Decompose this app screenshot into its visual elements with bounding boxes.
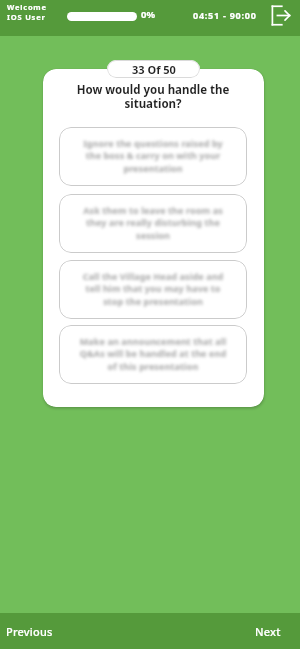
staticText: Previous bbox=[6, 624, 53, 639]
button[interactable]: Ignore the questions raised by the boss … bbox=[59, 127, 247, 186]
staticText: 04:51 - 90:00 bbox=[193, 9, 257, 21]
staticText: Call the Village Head aside and tell him… bbox=[77, 270, 229, 308]
button[interactable]: Next bbox=[249, 613, 300, 649]
staticText: Welcome bbox=[7, 2, 47, 12]
staticText: 33 Of 50 bbox=[132, 62, 176, 77]
staticText: Next bbox=[255, 624, 281, 639]
staticText: Ignore the questions raised by the boss … bbox=[77, 137, 229, 175]
staticText: Ask them to leave the room as they are r… bbox=[77, 204, 229, 242]
button[interactable]: Call the Village Head aside and tell him… bbox=[59, 260, 247, 319]
button[interactable]: Previous bbox=[0, 613, 59, 649]
button[interactable]: Ask them to leave the room as they are r… bbox=[59, 194, 247, 253]
staticText: Make an announcement that all Q&As will … bbox=[77, 335, 229, 373]
staticText: 0% bbox=[141, 8, 156, 21]
button[interactable]: Make an announcement that all Q&As will … bbox=[59, 325, 247, 384]
staticText: IOS User bbox=[7, 12, 46, 22]
button[interactable]: Logout bbox=[271, 5, 291, 26]
staticText: How would you handle the situation? bbox=[59, 82, 247, 111]
